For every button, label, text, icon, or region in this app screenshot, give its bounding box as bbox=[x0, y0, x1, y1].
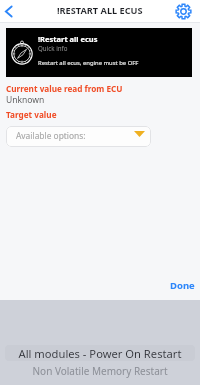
staticText: !RESTART ALL ECUS bbox=[57, 4, 143, 17]
staticText: Unknown bbox=[6, 94, 45, 106]
staticText: Done bbox=[170, 279, 195, 292]
button[interactable]: Done bbox=[166, 277, 198, 293]
staticText: !Restart all ecus bbox=[38, 34, 98, 44]
button[interactable]: Back bbox=[0, 0, 22, 23]
staticText: Quick info bbox=[38, 44, 68, 52]
button[interactable]: !Restart all ecus bbox=[6, 28, 192, 77]
staticText: All modules - Power On Restart bbox=[0, 346, 200, 361]
staticText: Target value bbox=[6, 109, 57, 120]
staticText: Current value read from ECU bbox=[6, 83, 123, 94]
staticText: Available options: bbox=[16, 130, 86, 141]
button[interactable]: Settings bbox=[168, 0, 200, 23]
staticText: Restart all ecus, engine must be OFF bbox=[38, 59, 139, 67]
staticText: Non Volatile Memory Restart bbox=[0, 364, 200, 378]
button[interactable]: Available options: bbox=[6, 126, 151, 147]
